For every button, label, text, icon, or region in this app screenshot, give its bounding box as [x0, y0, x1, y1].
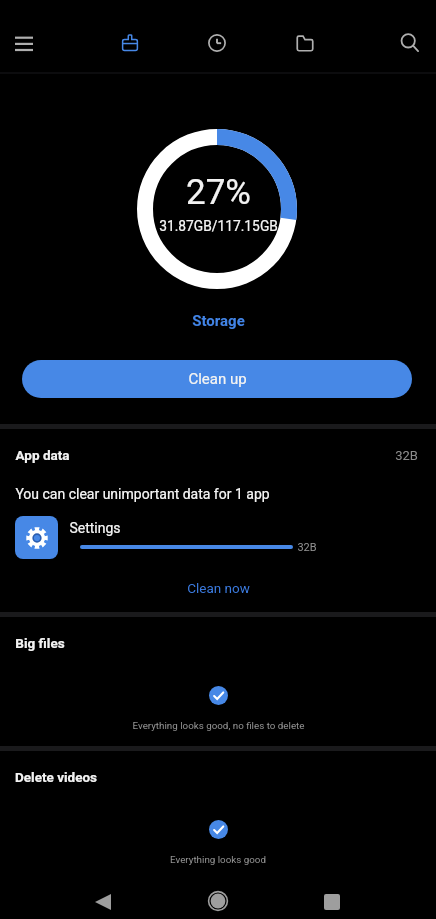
- staticText: 31.87GB/117.15GB: [159, 218, 278, 234]
- staticText: App data: [15, 447, 70, 463]
- button[interactable]: Settings: [0, 512, 436, 562]
- staticText: 32B: [297, 541, 317, 554]
- staticText: Clean now: [187, 580, 250, 596]
- staticText: 32B: [395, 448, 418, 463]
- button[interactable]: Search: [388, 21, 432, 65]
- button[interactable]: Menu: [2, 21, 46, 65]
- button[interactable]: Files: [283, 21, 327, 65]
- staticText: Everything looks good: [170, 854, 266, 865]
- button[interactable]: Clean up: [22, 360, 412, 398]
- button[interactable]: Back: [80, 879, 125, 919]
- button[interactable]: Clean now: [0, 573, 436, 603]
- button[interactable]: Home: [195, 878, 240, 919]
- staticText: Everything looks good, no files to delet…: [132, 720, 305, 731]
- staticText: You can clear unimportant data for 1 app: [15, 486, 270, 502]
- staticText: Storage: [192, 312, 245, 330]
- staticText: 27%: [186, 172, 251, 213]
- button[interactable]: Recents: [195, 21, 239, 65]
- staticText: Settings: [69, 520, 121, 536]
- staticText: Clean up: [188, 370, 247, 388]
- button[interactable]: Recents: [309, 879, 354, 919]
- button[interactable]: Clean: [108, 21, 152, 65]
- staticText: Big files: [15, 635, 65, 651]
- staticText: Delete videos: [15, 769, 97, 785]
